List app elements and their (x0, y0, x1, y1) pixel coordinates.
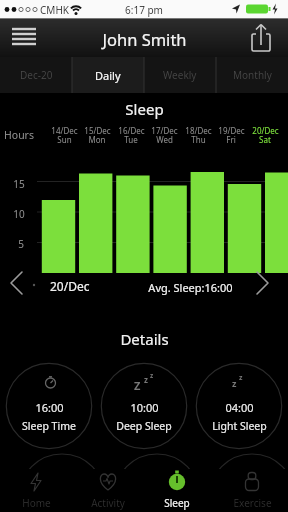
staticText: Sleep (164, 496, 190, 510)
staticText: Sun (57, 134, 72, 145)
staticText: Thu (191, 134, 206, 145)
staticText: 10 (13, 207, 25, 221)
staticText: Home (22, 496, 51, 510)
staticText: 16/Dec (118, 125, 145, 136)
staticText: z (144, 374, 148, 385)
staticText: z (150, 371, 154, 380)
staticText: 5 (18, 237, 24, 251)
staticText: Wed (156, 134, 173, 145)
staticText: Exercise (233, 496, 272, 510)
button[interactable]: Dec-20 (0, 57, 72, 93)
staticText: Details (120, 329, 169, 349)
button[interactable]: Z (101, 363, 187, 449)
staticText: Sleep Time (22, 419, 76, 433)
button[interactable] (5, 268, 29, 298)
staticText: John Smith (102, 28, 187, 50)
staticText: CMHK (40, 3, 69, 17)
staticText: 16:00 (35, 400, 64, 415)
button[interactable] (250, 268, 274, 298)
staticText: 15/Dec (84, 125, 111, 136)
button[interactable]: 16:00 (6, 363, 92, 449)
staticText: Fri (226, 134, 236, 145)
staticText: 14/Dec (51, 125, 78, 136)
staticText: Dec-20 (20, 68, 53, 82)
staticText: Tue (124, 134, 138, 145)
staticText: 19/Dec (218, 125, 245, 136)
staticText: Hours (4, 128, 34, 142)
button[interactable]: Monthly (216, 57, 288, 93)
staticText: Sat (259, 134, 271, 145)
button[interactable]: Home (0, 469, 72, 512)
button[interactable] (6, 24, 42, 52)
button[interactable]: Sleep (144, 469, 216, 512)
staticText: Light Sleep (212, 419, 267, 433)
staticText: Deep Sleep (116, 419, 172, 433)
button[interactable] (72, 57, 144, 93)
staticText: 6:17 pm (125, 3, 163, 17)
staticText: Avg. Sleep:16:00 (148, 280, 233, 295)
staticText: 15 (13, 177, 25, 191)
staticText: 18/Dec (185, 125, 212, 136)
staticText: Weekly (163, 68, 197, 82)
staticText: Daily (95, 68, 121, 83)
button[interactable]: Exercise (216, 469, 288, 512)
staticText: Activity (91, 496, 125, 510)
staticText: z (232, 377, 237, 389)
staticText: 20/Dec (252, 125, 279, 136)
button[interactable]: Daily (72, 57, 144, 93)
staticText: 17/Dec (151, 125, 178, 136)
staticText: z (239, 373, 243, 383)
staticText: Monthly (233, 68, 272, 82)
staticText: 04:00 (225, 400, 254, 415)
button[interactable] (243, 21, 279, 55)
button[interactable]: Weekly (144, 57, 216, 93)
staticText: Z (134, 378, 141, 393)
staticText: Mon (88, 134, 106, 145)
staticText: Sleep (125, 99, 164, 119)
staticText: 10:00 (130, 400, 159, 415)
staticText: 20/Dec (50, 278, 90, 294)
button[interactable]: z (196, 363, 282, 449)
button[interactable]: Activity (72, 469, 144, 512)
